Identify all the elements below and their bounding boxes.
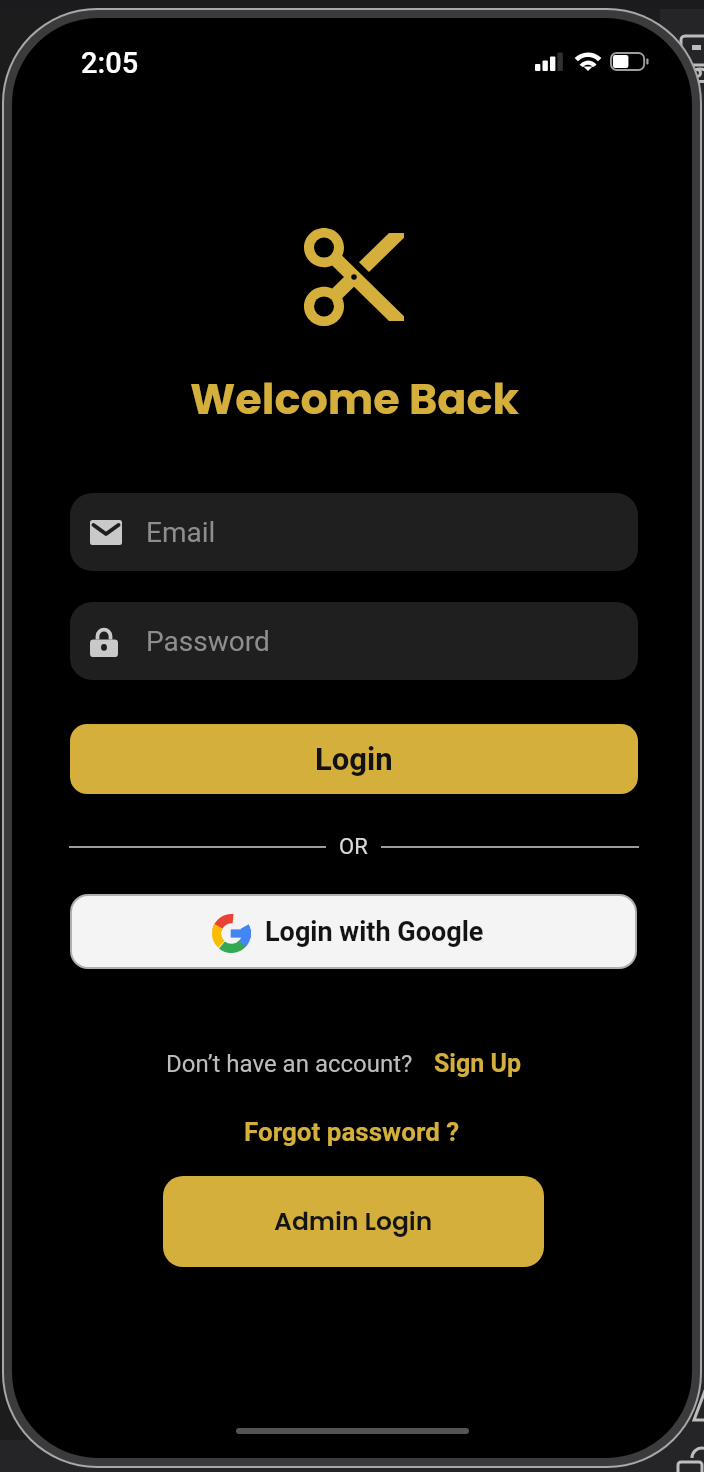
button[interactable]: Login with Google — [72, 896, 635, 967]
staticText: Password — [146, 625, 270, 658]
staticText: 2:05 — [81, 46, 139, 80]
staticText: Email — [146, 516, 216, 549]
button[interactable]: Sign Up — [434, 1049, 522, 1078]
staticText: Login with Google — [265, 916, 484, 948]
button[interactable]: Admin Login — [163, 1176, 544, 1267]
button[interactable]: Forgot password ? — [244, 1117, 460, 1147]
staticText: Login — [315, 741, 393, 777]
button[interactable]: Password — [70, 602, 638, 680]
staticText: Welcome Back — [190, 369, 520, 429]
button[interactable]: Login — [70, 724, 638, 794]
staticText: Admin Login — [274, 1204, 433, 1239]
staticText: Don’t have an account? — [166, 1050, 413, 1078]
button[interactable]: Email — [70, 493, 638, 571]
staticText: OR — [339, 834, 368, 860]
